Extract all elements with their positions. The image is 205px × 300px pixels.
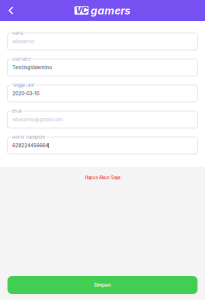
button[interactable]: wbwarno [7, 33, 197, 50]
button[interactable]: TestingValentino [7, 59, 197, 76]
button[interactable]: Hapus Akun Saya [77, 172, 128, 183]
button[interactable]: Back [0, 0, 22, 21]
staticText: 2020-03-10 [12, 90, 39, 96]
staticText: 628224456664 [12, 142, 48, 148]
staticText: Nama [12, 31, 23, 36]
staticText: Nomor Handphone [12, 135, 45, 140]
staticText: Email [12, 109, 22, 114]
button[interactable]: 628224456664 [7, 137, 197, 154]
staticText: Username [12, 57, 31, 62]
staticText: Simpan [94, 282, 111, 288]
button[interactable]: Simpan [7, 276, 197, 294]
staticText: gamers [90, 4, 130, 17]
staticText: Tanggal Lahir [12, 83, 35, 88]
staticText: Hapus Akun Saya [85, 175, 120, 180]
staticText: TestingValentino [12, 64, 52, 70]
button[interactable]: wbwarno@gmail.com [7, 111, 197, 128]
staticText: wbwarno [12, 38, 34, 44]
staticText: wbwarno@gmail.com [12, 116, 62, 122]
button[interactable]: 2020-03-10 [7, 85, 197, 102]
staticText: VC [75, 5, 87, 16]
